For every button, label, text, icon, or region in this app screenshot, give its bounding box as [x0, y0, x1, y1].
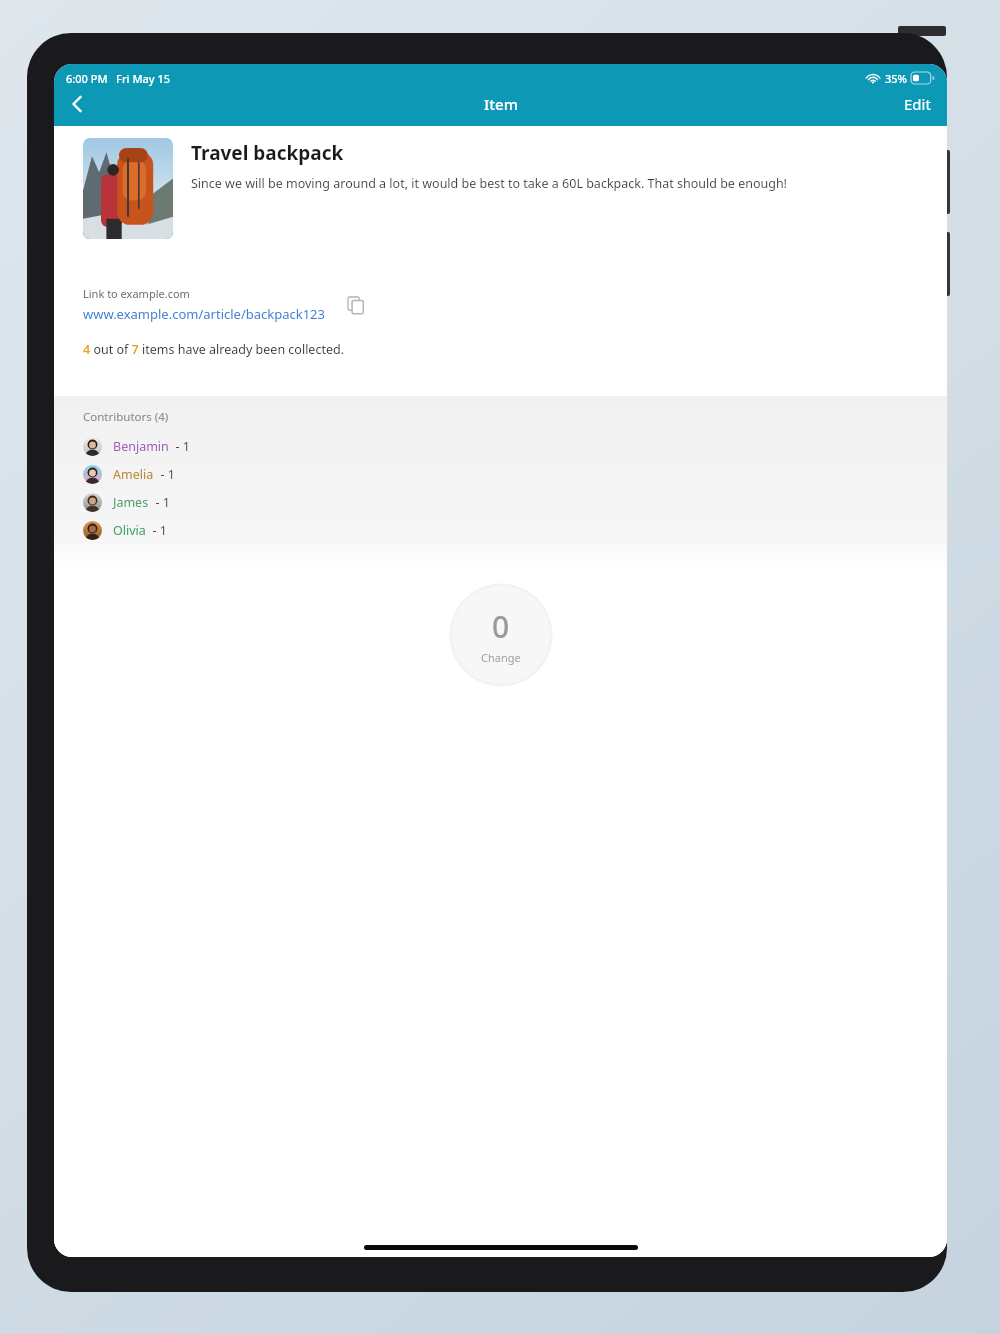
staticText: Benjamin: [113, 438, 169, 455]
staticText: Travel backpack: [191, 140, 344, 166]
button[interactable]: www.example.com/article/backpack123: [83, 305, 325, 323]
staticText: Change: [481, 650, 521, 665]
button[interactable]: Olivia: [83, 516, 167, 544]
staticText: www.example.com/article/backpack123: [83, 305, 325, 323]
staticText: Amelia: [113, 466, 154, 483]
staticText: - 1: [169, 438, 190, 455]
staticText: - 1: [146, 522, 167, 539]
button[interactable]: James: [83, 488, 170, 516]
staticText: Link to example.com: [83, 286, 190, 301]
button[interactable]: Edit: [896, 88, 939, 120]
button[interactable]: Benjamin: [83, 432, 190, 460]
staticText: 4 out of 7 items have already been colle…: [83, 341, 345, 358]
staticText: - 1: [154, 466, 175, 483]
button[interactable]: Copy link: [341, 290, 371, 320]
button[interactable]: Item photo: [83, 138, 173, 239]
staticText: - 1: [149, 494, 170, 511]
staticText: Contributors (4): [83, 409, 169, 425]
staticText: Item: [484, 94, 518, 114]
staticText: Olivia: [113, 522, 146, 539]
staticText: 6:00 PM Fri May 15: [66, 71, 171, 86]
button[interactable]: Amelia: [83, 460, 175, 488]
button[interactable]: Back: [54, 82, 100, 126]
staticText: Since we will be moving around a lot, it…: [191, 175, 787, 192]
staticText: 0: [492, 606, 510, 647]
staticText: James: [113, 494, 149, 511]
staticText: Edit: [904, 94, 931, 114]
button[interactable]: 0: [452, 586, 550, 684]
staticText: 35%: [885, 71, 907, 86]
